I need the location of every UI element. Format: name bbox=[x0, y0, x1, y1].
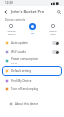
staticText: John's Bucket Pro bbox=[11, 9, 53, 14]
staticText: About this device bbox=[15, 102, 59, 106]
button[interactable]: Default setting bbox=[2, 66, 62, 76]
button[interactable]: Auto update bbox=[0, 38, 64, 47]
staticText: Device reset bbox=[49, 30, 57, 36]
button[interactable]: More options bbox=[53, 6, 64, 17]
staticText: Power consumption bbox=[11, 57, 39, 61]
staticText: On bbox=[31, 31, 35, 34]
button[interactable]: Wi-Fi audio bbox=[0, 47, 64, 56]
staticText: Volume control bbox=[7, 30, 16, 36]
button[interactable]: Find My Device bbox=[0, 77, 64, 85]
staticText: Auto update bbox=[11, 41, 52, 45]
button[interactable]: Turn off and unplug bbox=[0, 85, 64, 93]
button[interactable]: Power bbox=[29, 23, 36, 30]
staticText: 4.2 W bbox=[11, 61, 18, 64]
button[interactable]: Volume control bbox=[4, 22, 18, 36]
staticText: Default setting bbox=[11, 69, 59, 73]
staticText: Device controls bbox=[5, 18, 64, 22]
button[interactable]: About this device bbox=[0, 100, 64, 108]
button[interactable]: Back bbox=[0, 6, 11, 17]
staticText: 12:30 bbox=[5, 1, 13, 5]
staticText: Turn off and unplug bbox=[11, 87, 59, 91]
button[interactable]: Device reset bbox=[46, 22, 60, 36]
staticText: Find My Device bbox=[11, 79, 59, 83]
button[interactable]: Power consumption bbox=[0, 56, 64, 65]
staticText: Wi-Fi audio bbox=[11, 50, 52, 54]
